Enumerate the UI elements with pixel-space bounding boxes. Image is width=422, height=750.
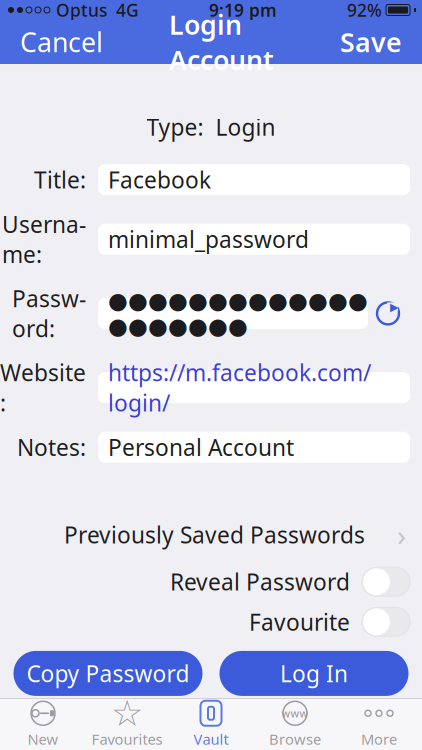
staticText: 9:19 pm xyxy=(209,0,277,21)
staticText: Copy Password xyxy=(26,658,189,688)
staticText: Reveal Password xyxy=(170,567,350,597)
staticText: Save xyxy=(340,24,402,60)
button[interactable]: Copy Password xyxy=(13,651,202,696)
staticText: Vault xyxy=(193,729,228,749)
staticText: Type: Login xyxy=(146,112,275,142)
button[interactable]: More xyxy=(337,699,421,749)
staticText: Previously Saved Passwords xyxy=(64,520,365,550)
button[interactable]: Save xyxy=(320,20,422,64)
staticText: Log In xyxy=(280,658,348,688)
button[interactable]: Cancel xyxy=(0,20,123,64)
staticText: More xyxy=(361,729,397,749)
staticText: New xyxy=(27,729,58,749)
staticText: ☆ xyxy=(111,693,143,734)
staticText: ▸ xyxy=(390,297,399,316)
button[interactable]: Favourite xyxy=(0,607,422,637)
button[interactable]: Vault xyxy=(169,699,253,749)
button[interactable]: www xyxy=(253,699,337,749)
staticText: www xyxy=(281,706,308,720)
staticText: Title: xyxy=(34,165,86,195)
staticText: 4G xyxy=(116,0,139,21)
button[interactable]: ☆ xyxy=(85,699,169,749)
staticText: Favourite xyxy=(249,607,350,637)
staticText: Password: xyxy=(12,283,86,343)
staticText: Notes: xyxy=(17,432,86,462)
staticText: ●●●●●●●●●●●●●●●●●●●● xyxy=(108,288,368,339)
staticText: Website: xyxy=(0,357,86,418)
staticText: Browse xyxy=(269,729,321,749)
staticText: Cancel xyxy=(20,24,103,60)
button[interactable]: Generate password xyxy=(368,293,408,333)
staticText: Facebook xyxy=(108,165,211,195)
staticText: Personal Account xyxy=(108,432,294,462)
staticText: https://m.facebook.com/login/ xyxy=(108,357,371,418)
button[interactable]: Log In xyxy=(219,651,408,696)
staticText: Optus xyxy=(56,0,107,21)
button[interactable]: Previously Saved Passwords xyxy=(0,517,422,553)
button[interactable]: Reveal Password xyxy=(0,567,422,597)
staticText: Login Account xyxy=(169,7,274,77)
staticText: Username: xyxy=(2,209,86,269)
staticText: minimal_password xyxy=(108,224,309,254)
staticText: › xyxy=(397,515,406,554)
staticText: Favourites xyxy=(91,729,162,749)
staticText: 92% xyxy=(347,0,382,21)
button[interactable]: New xyxy=(1,699,85,749)
